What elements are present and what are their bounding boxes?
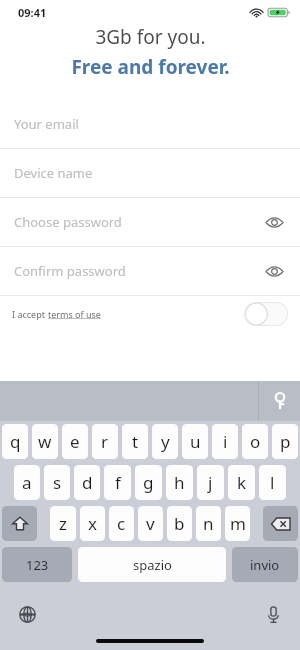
button[interactable]: j bbox=[197, 465, 224, 500]
button[interactable]: Show password bbox=[260, 257, 288, 285]
staticText: h bbox=[174, 471, 185, 494]
staticText: Free and forever. bbox=[71, 54, 230, 80]
button[interactable]: u bbox=[182, 424, 208, 459]
staticText: g bbox=[143, 471, 154, 494]
button[interactable]: p bbox=[272, 424, 298, 459]
button[interactable]: Backspace bbox=[263, 506, 298, 541]
button[interactable]: o bbox=[242, 424, 268, 459]
staticText: n bbox=[203, 512, 214, 535]
staticText: e bbox=[70, 430, 80, 453]
button[interactable]: Accept terms of use toggle bbox=[244, 302, 288, 326]
staticText: l bbox=[270, 471, 275, 494]
button[interactable]: w bbox=[32, 424, 58, 459]
button[interactable]: Choose password bbox=[0, 198, 300, 246]
button[interactable]: b bbox=[167, 506, 192, 541]
button[interactable]: s bbox=[44, 465, 70, 500]
button[interactable]: n bbox=[196, 506, 221, 541]
button[interactable]: invio bbox=[232, 547, 298, 582]
staticText: u bbox=[190, 430, 201, 453]
button[interactable]: h bbox=[166, 465, 193, 500]
button[interactable]: a bbox=[14, 465, 40, 500]
button[interactable]: y bbox=[152, 424, 178, 459]
staticText: Confirm password bbox=[14, 262, 260, 280]
button[interactable]: I accept bbox=[12, 308, 244, 320]
staticText: o bbox=[250, 430, 261, 453]
button[interactable]: d bbox=[74, 465, 100, 500]
button[interactable]: e bbox=[62, 424, 88, 459]
button[interactable]: spazio bbox=[78, 547, 226, 582]
staticText: f bbox=[115, 471, 121, 494]
staticText: b bbox=[174, 512, 185, 535]
staticText: Device name bbox=[14, 164, 288, 182]
staticText: m bbox=[230, 512, 246, 535]
button[interactable]: Device name bbox=[0, 149, 300, 197]
staticText: I accept bbox=[12, 308, 48, 320]
button[interactable]: g bbox=[135, 465, 162, 500]
button[interactable]: z bbox=[50, 506, 76, 541]
staticText: 123 bbox=[26, 556, 49, 574]
button[interactable]: c bbox=[109, 506, 134, 541]
button[interactable]: Show password bbox=[260, 208, 288, 236]
staticText: v bbox=[146, 512, 155, 535]
button[interactable]: 123 bbox=[2, 547, 72, 582]
button[interactable]: r bbox=[92, 424, 118, 459]
button[interactable]: f bbox=[104, 465, 131, 500]
staticText: d bbox=[82, 471, 93, 494]
button[interactable]: q bbox=[2, 424, 28, 459]
staticText: y bbox=[161, 430, 170, 453]
staticText: Choose password bbox=[14, 213, 260, 231]
staticText: invio bbox=[250, 556, 280, 574]
button[interactable]: m bbox=[225, 506, 250, 541]
staticText: z bbox=[59, 512, 67, 535]
staticText: Your email bbox=[14, 115, 288, 133]
button[interactable]: l bbox=[259, 465, 286, 500]
staticText: p bbox=[280, 430, 291, 453]
staticText: x bbox=[88, 512, 97, 535]
staticText: q bbox=[10, 430, 21, 453]
staticText: s bbox=[53, 471, 62, 494]
staticText: i bbox=[223, 430, 228, 453]
staticText: t bbox=[132, 430, 139, 453]
staticText: 3Gb for you. bbox=[95, 24, 206, 50]
button[interactable]: Change keyboard language bbox=[12, 599, 42, 629]
staticText: w bbox=[38, 430, 52, 453]
button[interactable]: Your email bbox=[0, 100, 300, 148]
staticText: spazio bbox=[133, 556, 172, 574]
button[interactable]: t bbox=[122, 424, 148, 459]
button[interactable]: k bbox=[228, 465, 255, 500]
button[interactable]: i bbox=[212, 424, 238, 459]
button[interactable]: Dictation bbox=[258, 599, 288, 629]
staticText: a bbox=[22, 471, 32, 494]
button[interactable]: Shift bbox=[2, 506, 37, 541]
button[interactable]: v bbox=[138, 506, 163, 541]
staticText: r bbox=[101, 430, 109, 453]
staticText: c bbox=[117, 512, 126, 535]
staticText: terms of use bbox=[48, 308, 101, 320]
button[interactable]: Passwords bbox=[259, 381, 300, 421]
staticText: 09:41 bbox=[18, 5, 47, 20]
staticText: j bbox=[208, 471, 213, 494]
button[interactable]: Confirm password bbox=[0, 247, 300, 295]
staticText: k bbox=[237, 471, 247, 494]
button[interactable]: x bbox=[80, 506, 105, 541]
